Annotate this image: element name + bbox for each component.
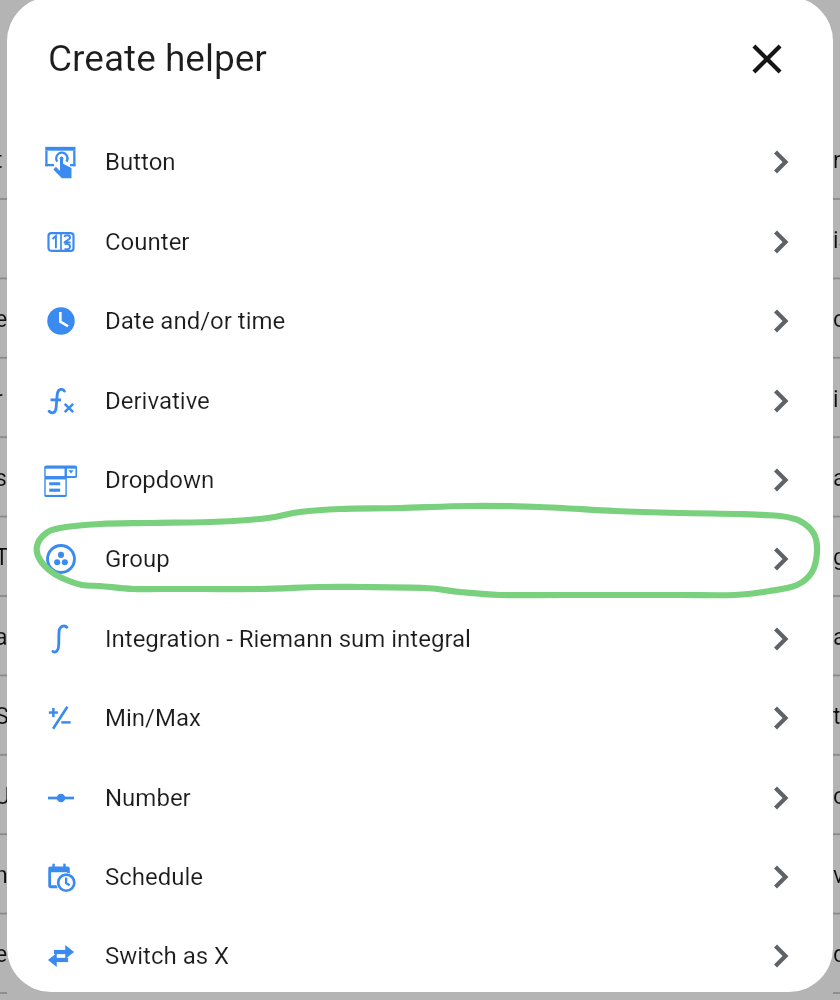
staticText: T <box>0 544 195 571</box>
staticText: Derivative <box>105 387 210 415</box>
button[interactable]: Schedule <box>7 837 833 916</box>
staticText: n <box>0 862 195 889</box>
staticText: at <box>833 624 840 651</box>
staticText: Date and/or time <box>105 307 286 335</box>
staticText: to <box>833 703 840 730</box>
staticText: a <box>0 624 195 651</box>
staticText: get <box>833 544 840 571</box>
staticText: t <box>0 147 195 174</box>
staticText: Schedule <box>105 863 204 891</box>
button[interactable]: Date and/or time <box>7 281 833 360</box>
staticText: Button <box>105 148 176 176</box>
staticText: Group <box>105 545 170 573</box>
staticText: Min/Max <box>105 704 201 732</box>
staticText: is <box>833 227 840 254</box>
staticText: on <box>833 306 840 333</box>
staticText: do <box>833 941 840 968</box>
button[interactable]: Dropdown <box>7 440 833 519</box>
button[interactable]: Integration - Riemann sum integral <box>7 599 833 678</box>
staticText: of <box>833 783 840 810</box>
staticText: Number <box>105 784 191 812</box>
staticText: and <box>833 465 840 492</box>
staticText: s <box>0 465 195 492</box>
staticText: Integration - Riemann sum integral <box>105 625 471 653</box>
staticText: Switch as X <box>105 942 230 970</box>
button[interactable]: Counter <box>7 202 833 281</box>
staticText: Counter <box>105 228 190 256</box>
button[interactable]: Group <box>7 519 833 598</box>
staticText: e <box>0 941 195 968</box>
button[interactable]: Number <box>7 758 833 837</box>
staticText: i <box>0 227 195 254</box>
staticText: results <box>833 147 840 174</box>
staticText: e <box>0 306 195 333</box>
staticText: r <box>0 386 195 413</box>
staticText: very <box>833 862 840 889</box>
button[interactable]: Min/Max <box>7 678 833 757</box>
staticText: Create helper <box>48 37 267 80</box>
staticText: U <box>0 783 195 810</box>
button[interactable]: Button <box>7 122 833 201</box>
button[interactable]: Switch as X <box>7 916 833 995</box>
staticText: Dropdown <box>105 466 215 494</box>
staticText: ing <box>833 386 840 413</box>
button[interactable]: Close <box>730 22 804 96</box>
staticText: S <box>0 703 195 730</box>
button[interactable]: Derivative <box>7 361 833 440</box>
